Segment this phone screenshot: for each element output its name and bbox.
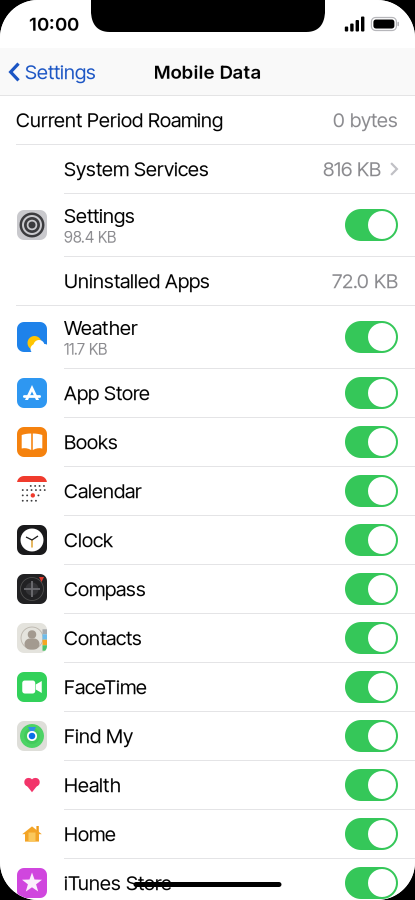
button[interactable]: Toggle <box>345 671 398 703</box>
button[interactable]: Toggle <box>345 769 398 801</box>
staticText: Books <box>64 430 118 454</box>
staticText: 72.0 KB <box>332 269 398 293</box>
button[interactable]: Toggle <box>345 321 398 353</box>
button[interactable]: Health <box>0 761 415 810</box>
button[interactable]: Compass <box>0 565 415 614</box>
button[interactable]: Weather <box>0 306 415 369</box>
staticText: Settings <box>64 204 135 228</box>
staticText: Mobile Data <box>153 61 261 83</box>
button[interactable]: Toggle <box>345 818 398 850</box>
staticText: Weather <box>64 316 138 340</box>
staticText: Home <box>64 822 116 846</box>
button[interactable]: Find My <box>0 712 415 761</box>
button[interactable]: FaceTime <box>0 663 415 712</box>
button[interactable]: Books <box>0 418 415 467</box>
button[interactable]: Contacts <box>0 614 415 663</box>
button[interactable]: Calendar <box>0 467 415 516</box>
button[interactable]: Uninstalled Apps <box>0 257 415 306</box>
button[interactable]: Toggle <box>345 573 398 605</box>
staticText: 0 bytes <box>333 108 398 132</box>
staticText: Calendar <box>64 479 142 503</box>
staticText: iTunes Store <box>64 871 172 895</box>
staticText: Current Period Roaming <box>16 108 223 132</box>
button[interactable]: System Services <box>0 145 415 194</box>
button[interactable]: Settings <box>0 48 104 96</box>
button[interactable]: Toggle <box>345 720 398 752</box>
button[interactable]: App Store <box>0 369 415 418</box>
button[interactable]: Clock <box>0 516 415 565</box>
staticText: 98.4 KB <box>64 228 116 246</box>
button[interactable]: Toggle <box>345 867 398 899</box>
staticText: 11.7 KB <box>64 340 107 358</box>
staticText: Settings <box>25 60 96 84</box>
staticText: FaceTime <box>64 675 147 699</box>
staticText: Compass <box>64 577 146 601</box>
button[interactable]: Toggle <box>345 475 398 507</box>
button[interactable]: Toggle <box>345 377 398 409</box>
staticText: Find My <box>64 724 133 748</box>
staticText: 10:00 <box>29 13 79 35</box>
button[interactable]: Toggle <box>345 426 398 458</box>
staticText: Health <box>64 773 121 797</box>
staticText: System Services <box>64 157 209 181</box>
button[interactable]: iTunes Store <box>0 859 415 900</box>
staticText: Uninstalled Apps <box>64 269 210 293</box>
button[interactable]: Current Period Roaming <box>0 96 415 145</box>
staticText: 816 KB <box>323 157 381 181</box>
button[interactable]: Toggle <box>345 209 398 241</box>
staticText: Contacts <box>64 626 142 650</box>
staticText: Clock <box>64 528 113 552</box>
staticText: App Store <box>64 381 150 405</box>
button[interactable]: Toggle <box>345 622 398 654</box>
button[interactable]: Settings <box>0 194 415 257</box>
button[interactable]: Home <box>0 810 415 859</box>
button[interactable]: Toggle <box>345 524 398 556</box>
